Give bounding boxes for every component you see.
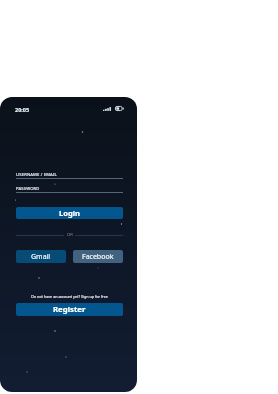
staticText: Login	[59, 208, 80, 218]
staticText: 20:05	[15, 106, 30, 113]
staticText: OR	[67, 232, 73, 238]
staticText: USERNAME / EMAIL	[16, 172, 57, 178]
button[interactable]: Login	[16, 207, 123, 219]
staticText: PASSWORD	[16, 186, 40, 192]
staticText: Gmail	[31, 252, 51, 262]
staticText: Do not have an account yet? Sign up for …	[31, 294, 108, 299]
other: Battery	[115, 106, 124, 111]
button[interactable]: Register	[16, 303, 123, 316]
staticText: Facebook	[82, 252, 114, 262]
button[interactable]: Facebook	[73, 250, 123, 263]
button[interactable]: Gmail	[16, 250, 66, 263]
staticText: Register	[53, 304, 86, 315]
other: Signal strength	[103, 107, 111, 111]
button[interactable]: Do not have an account yet? Sign up for …	[16, 294, 123, 299]
